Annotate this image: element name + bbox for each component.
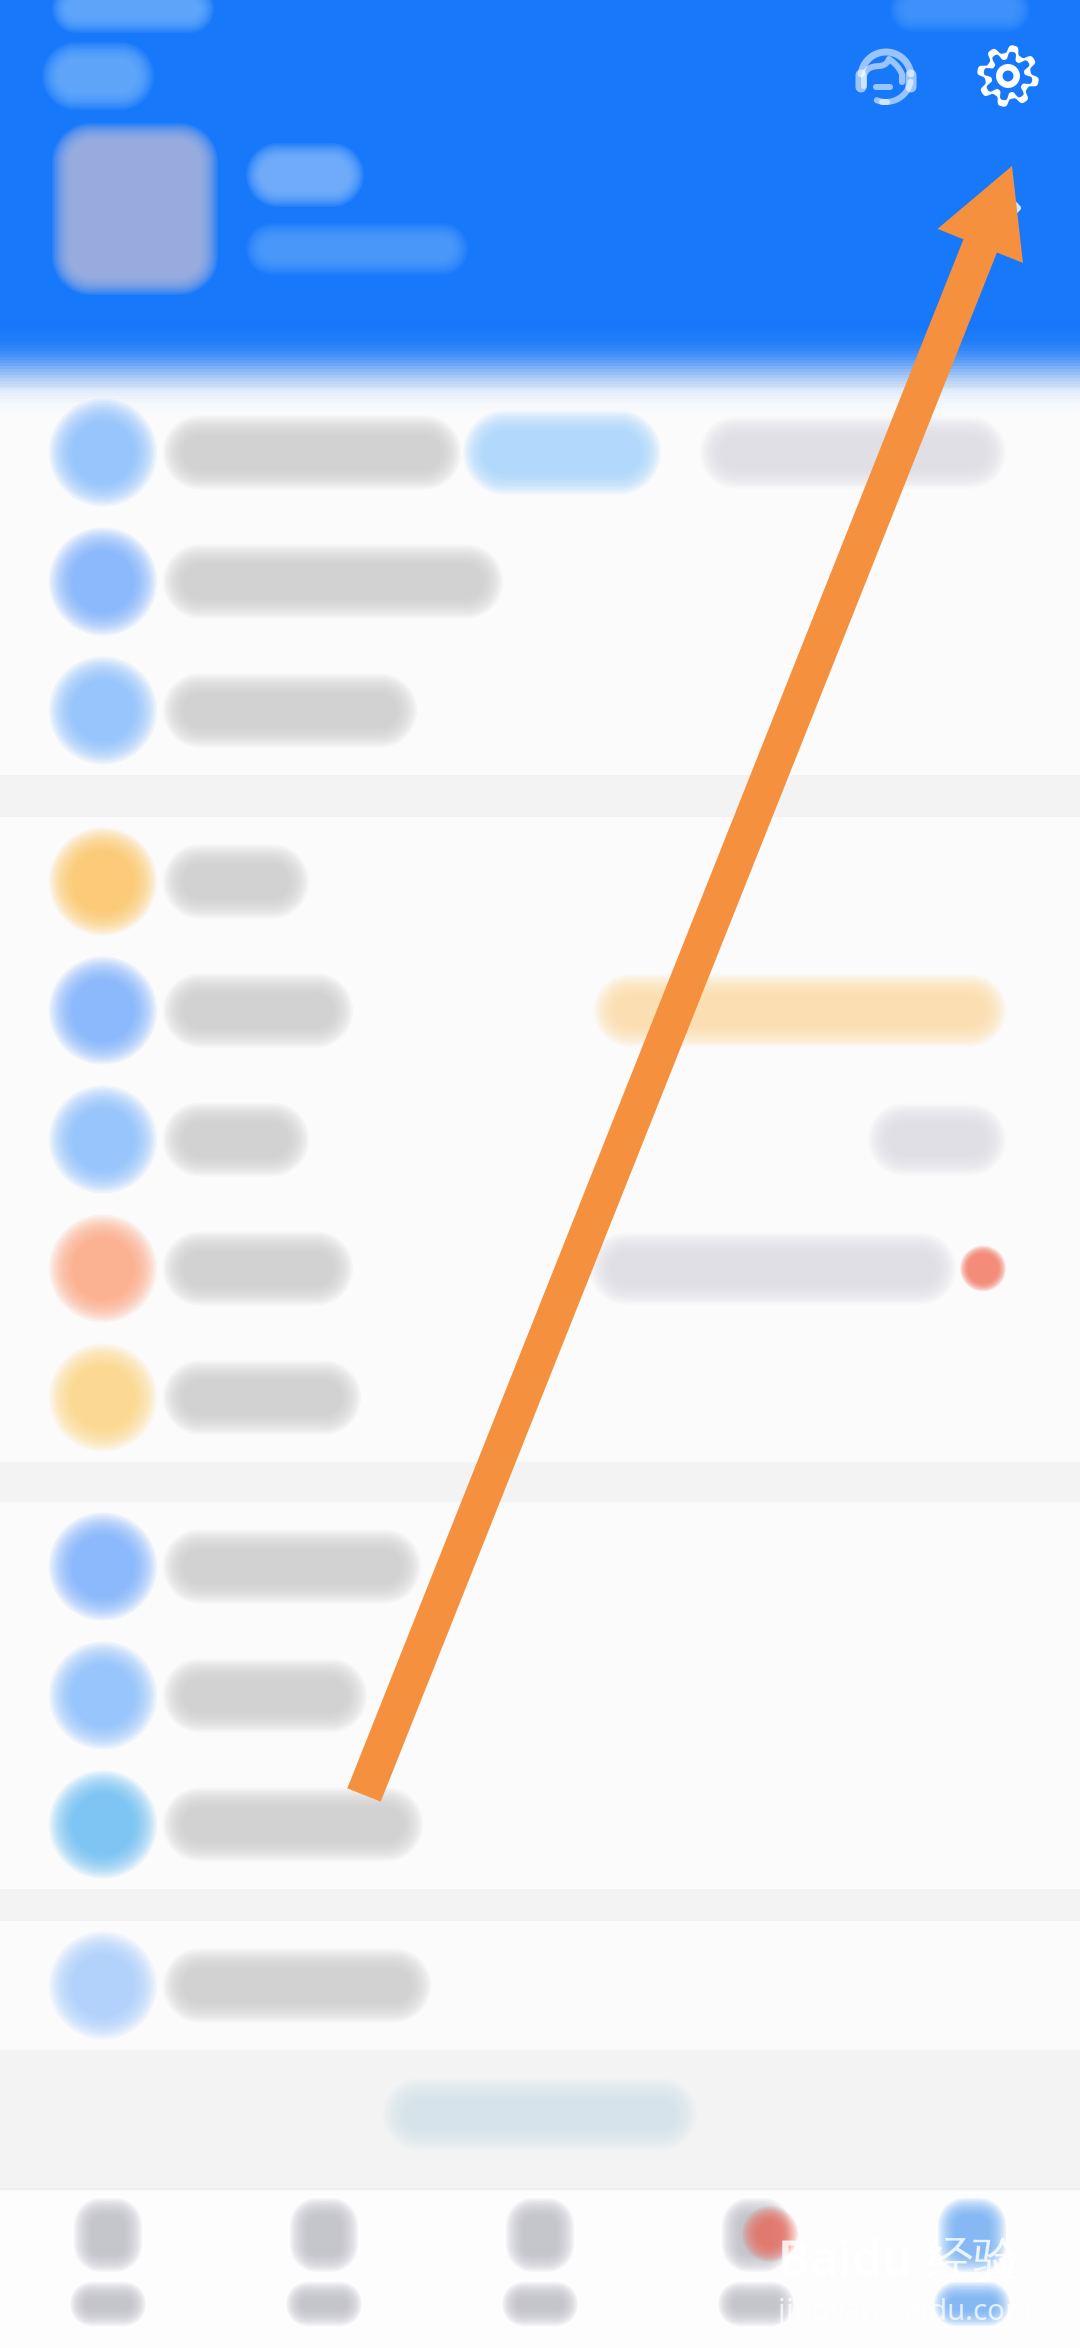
button[interactable] bbox=[0, 946, 1080, 1075]
button[interactable] bbox=[0, 1631, 1080, 1760]
button[interactable] bbox=[0, 1333, 1080, 1462]
staticText: jingyan.baidu.com bbox=[778, 2289, 1032, 2328]
button[interactable] bbox=[0, 1204, 1080, 1333]
button[interactable]: Discover bbox=[216, 2202, 432, 2322]
button[interactable] bbox=[0, 817, 1080, 946]
button[interactable]: Messages bbox=[648, 2202, 864, 2322]
button[interactable] bbox=[0, 388, 1080, 517]
button[interactable] bbox=[0, 1502, 1080, 1631]
button[interactable]: Settings bbox=[969, 37, 1047, 115]
button[interactable] bbox=[0, 646, 1080, 775]
button[interactable] bbox=[0, 1921, 1080, 2050]
button[interactable]: Services bbox=[432, 2202, 648, 2322]
button[interactable] bbox=[0, 1075, 1080, 1204]
button[interactable] bbox=[0, 517, 1080, 646]
button[interactable] bbox=[0, 1760, 1080, 1889]
button[interactable]: Customer service bbox=[847, 37, 925, 115]
button[interactable]: Home bbox=[0, 2202, 216, 2322]
button[interactable] bbox=[0, 134, 1080, 284]
button[interactable]: Me bbox=[864, 2202, 1080, 2322]
staticText: Baidu 经验 bbox=[778, 2225, 1021, 2289]
